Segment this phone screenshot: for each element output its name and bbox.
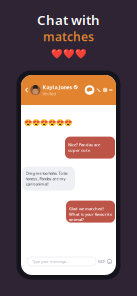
button[interactable]: Emoji <box>107 259 112 264</box>
button[interactable]: Settings <box>103 88 107 92</box>
button[interactable]: Send a GIF <box>96 259 107 264</box>
staticText: ❤️❤️❤️ <box>50 49 86 59</box>
button[interactable]: Back <box>23 85 30 95</box>
staticText: 😍😍😍😍😍😍 <box>24 118 72 126</box>
staticText: Verified <box>42 91 55 96</box>
staticText: Glad we matched! What is your favourite … <box>69 206 112 222</box>
staticText: Chat with <box>37 11 100 29</box>
staticText: GIF <box>98 259 105 264</box>
staticText: matches <box>43 29 94 45</box>
staticText: Nice? Pandas are super cute <box>68 142 100 153</box>
button[interactable]: More options <box>107 89 112 91</box>
button[interactable]: Type your message... <box>27 257 96 266</box>
button[interactable]: Call <box>94 88 103 92</box>
button[interactable]: Send a like <box>85 85 94 95</box>
staticText: Omg me too haha. To be honest...Pandas a… <box>25 171 67 186</box>
staticText: Kayla Jones <box>42 84 72 91</box>
staticText: Type your message... <box>32 259 69 264</box>
